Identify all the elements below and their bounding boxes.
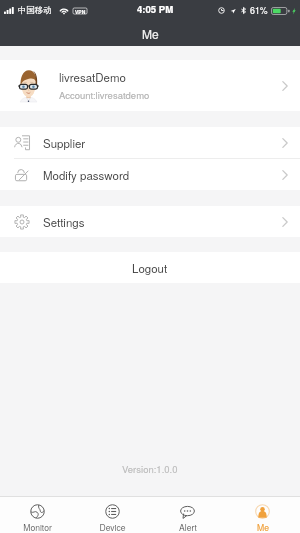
staticText: Settings xyxy=(43,214,85,230)
button[interactable]: Logout xyxy=(0,252,300,283)
button[interactable]: Supplier xyxy=(0,127,300,158)
staticText: Logout xyxy=(132,260,168,276)
button[interactable]: Alert xyxy=(150,497,225,533)
staticText: Me xyxy=(257,521,269,533)
button[interactable]: Settings xyxy=(0,206,300,237)
staticText: VPN xyxy=(75,8,86,14)
button[interactable]: Me xyxy=(225,497,300,533)
button[interactable]: Device xyxy=(75,497,150,533)
staticText: 中国移动 xyxy=(18,5,52,16)
staticText: Account:livresatdemo xyxy=(59,88,150,102)
staticText: livresatDemo xyxy=(59,69,126,85)
staticText: Version:1.0.0 xyxy=(122,462,178,476)
staticText: Alert xyxy=(179,521,197,533)
button[interactable]: Monitor xyxy=(0,497,75,533)
button[interactable]: livresatDemo xyxy=(0,60,300,111)
staticText: 4:05 PM xyxy=(137,2,174,16)
staticText: Me xyxy=(142,25,159,42)
button[interactable]: Modify password xyxy=(0,159,300,190)
staticText: Modify password xyxy=(43,167,130,183)
staticText: Device xyxy=(99,521,126,533)
staticText: Monitor xyxy=(23,521,52,533)
staticText: Supplier xyxy=(43,135,86,151)
staticText: 61% xyxy=(250,4,268,17)
